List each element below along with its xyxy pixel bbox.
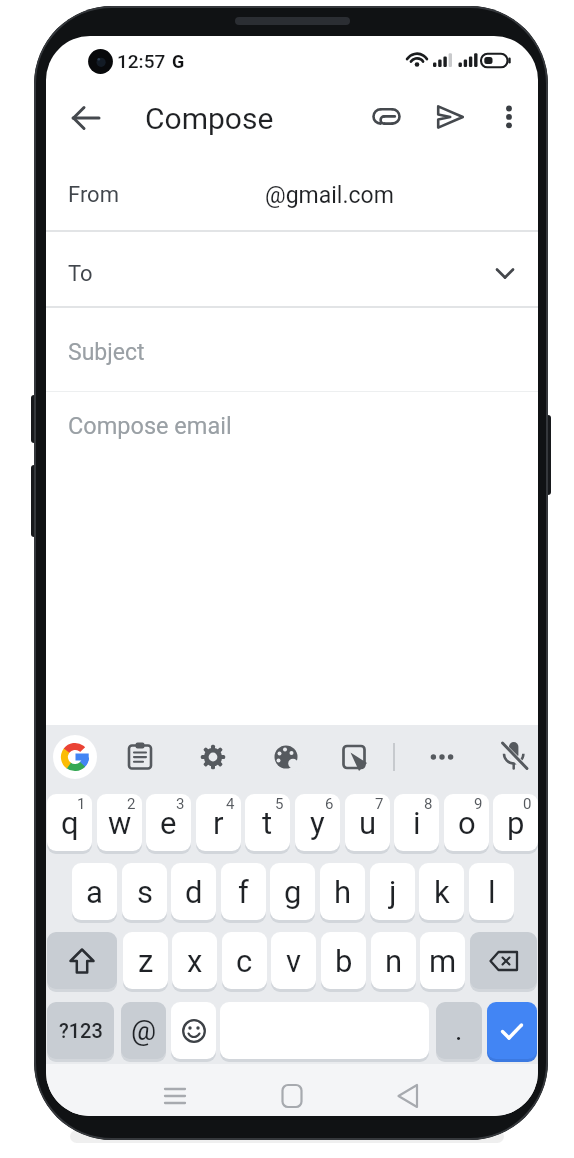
button[interactable]: d (171, 863, 216, 920)
staticText: 4 (226, 795, 235, 813)
button[interactable]: k (419, 863, 464, 920)
staticText: Subject (68, 339, 145, 366)
button[interactable] (68, 100, 104, 136)
staticText: q (61, 805, 79, 841)
button[interactable] (390, 1078, 426, 1114)
staticText: To (68, 261, 93, 287)
button[interactable] (46, 231, 538, 306)
staticText: m (429, 943, 457, 979)
button[interactable] (157, 1078, 193, 1114)
staticText: f (238, 874, 249, 910)
button[interactable]: s (122, 863, 167, 920)
button[interactable]: j (370, 863, 415, 920)
button[interactable] (268, 739, 304, 775)
button[interactable]: r (196, 794, 241, 851)
button[interactable] (337, 739, 373, 775)
staticText: o (458, 805, 476, 841)
button[interactable]: m (420, 932, 465, 989)
button[interactable] (47, 932, 117, 989)
staticText: 12:57 (117, 50, 166, 72)
staticText: u (359, 805, 377, 841)
button[interactable] (368, 98, 405, 135)
staticText: ?123 (59, 1019, 103, 1042)
button[interactable]: q (47, 794, 92, 851)
button[interactable] (122, 739, 158, 775)
button[interactable]: l (469, 863, 514, 920)
button[interactable] (274, 1078, 310, 1114)
staticText: c (236, 943, 253, 979)
staticText: k (434, 874, 450, 910)
button[interactable]: b (321, 932, 366, 989)
button[interactable]: p (493, 794, 538, 851)
button[interactable] (494, 98, 524, 136)
staticText: t (262, 805, 273, 841)
button[interactable]: i (394, 794, 439, 851)
button[interactable] (424, 739, 460, 775)
staticText: g (284, 874, 302, 910)
button[interactable]: f (221, 863, 266, 920)
staticText: 5 (275, 795, 284, 813)
button[interactable] (53, 735, 97, 779)
button[interactable]: n (371, 932, 416, 989)
staticText: 0 (523, 795, 532, 813)
button[interactable]: . (436, 1002, 482, 1059)
button[interactable]: a (72, 863, 117, 920)
staticText: s (137, 874, 153, 910)
button[interactable] (171, 1002, 216, 1059)
button[interactable]: y (295, 794, 340, 851)
staticText: 7 (375, 795, 384, 813)
staticText: 9 (474, 795, 483, 813)
staticText: v (286, 943, 302, 979)
staticText: j (389, 874, 397, 910)
staticText: e (160, 805, 177, 841)
staticText: From (68, 182, 119, 208)
button[interactable]: x (172, 932, 217, 989)
staticText: Compose email (68, 412, 232, 440)
button[interactable]: t (245, 794, 290, 851)
button[interactable] (496, 739, 532, 775)
staticText: 1 (77, 795, 86, 813)
button[interactable]: e (146, 794, 191, 851)
button[interactable]: c (222, 932, 267, 989)
staticText: @ (131, 1014, 157, 1047)
staticText: h (334, 874, 352, 910)
staticText: p (507, 805, 525, 841)
button[interactable] (46, 307, 538, 390)
staticText: b (335, 943, 353, 979)
button[interactable]: g (270, 863, 315, 920)
staticText: a (86, 874, 103, 910)
staticText: z (138, 943, 154, 979)
button[interactable]: w (97, 794, 142, 851)
button[interactable]: v (271, 932, 316, 989)
button[interactable]: ?123 (47, 1002, 114, 1059)
button[interactable]: @ (121, 1002, 166, 1059)
staticText: d (185, 874, 203, 910)
staticText: x (187, 943, 203, 979)
button[interactable]: o (444, 794, 489, 851)
staticText: n (385, 943, 403, 979)
button[interactable] (433, 99, 469, 135)
button[interactable]: z (123, 932, 168, 989)
staticText: 6 (325, 795, 334, 813)
staticText: @gmail.com (265, 182, 394, 209)
staticText: i (413, 805, 421, 841)
button[interactable] (46, 392, 538, 725)
staticText: 3 (176, 795, 185, 813)
button[interactable] (195, 739, 231, 775)
staticText: 8 (424, 795, 433, 813)
button[interactable] (487, 1002, 537, 1059)
staticText: l (488, 874, 496, 910)
staticText: w (108, 805, 132, 841)
staticText: r (213, 805, 224, 841)
button[interactable] (470, 932, 537, 989)
staticText: y (310, 805, 325, 841)
staticText: Compose (145, 101, 274, 136)
staticText: . (455, 1014, 463, 1047)
staticText: 2 (127, 795, 136, 813)
button[interactable]: u (345, 794, 390, 851)
button[interactable]: h (320, 863, 365, 920)
staticText: G (172, 51, 185, 72)
button[interactable] (489, 260, 521, 286)
